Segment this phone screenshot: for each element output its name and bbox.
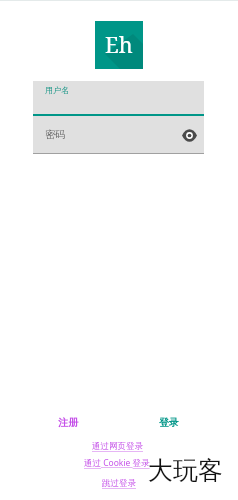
- button[interactable]: 通过网页登录: [89, 439, 146, 454]
- button[interactable]: 用户名: [33, 81, 204, 116]
- button[interactable]: 通过 Cookie 登录: [81, 455, 153, 471]
- button[interactable]: 注册: [48, 410, 88, 434]
- staticText: 跳过登录: [102, 478, 136, 489]
- staticText: 用户名: [45, 85, 69, 95]
- button[interactable]: EhViewer logo: [95, 21, 143, 69]
- staticText: 大玩客: [148, 455, 223, 486]
- staticText: Eh: [105, 29, 133, 59]
- button[interactable]: Show password: [177, 123, 201, 147]
- button[interactable]: 登录: [149, 410, 189, 434]
- staticText: 登录: [159, 416, 179, 429]
- button[interactable]: 密码: [33, 116, 204, 154]
- staticText: 通过 Cookie 登录: [84, 457, 150, 469]
- button[interactable]: 跳过登录: [99, 476, 139, 491]
- staticText: 密码: [45, 128, 65, 141]
- staticText: 通过网页登录: [92, 441, 143, 452]
- staticText: 注册: [58, 416, 78, 429]
